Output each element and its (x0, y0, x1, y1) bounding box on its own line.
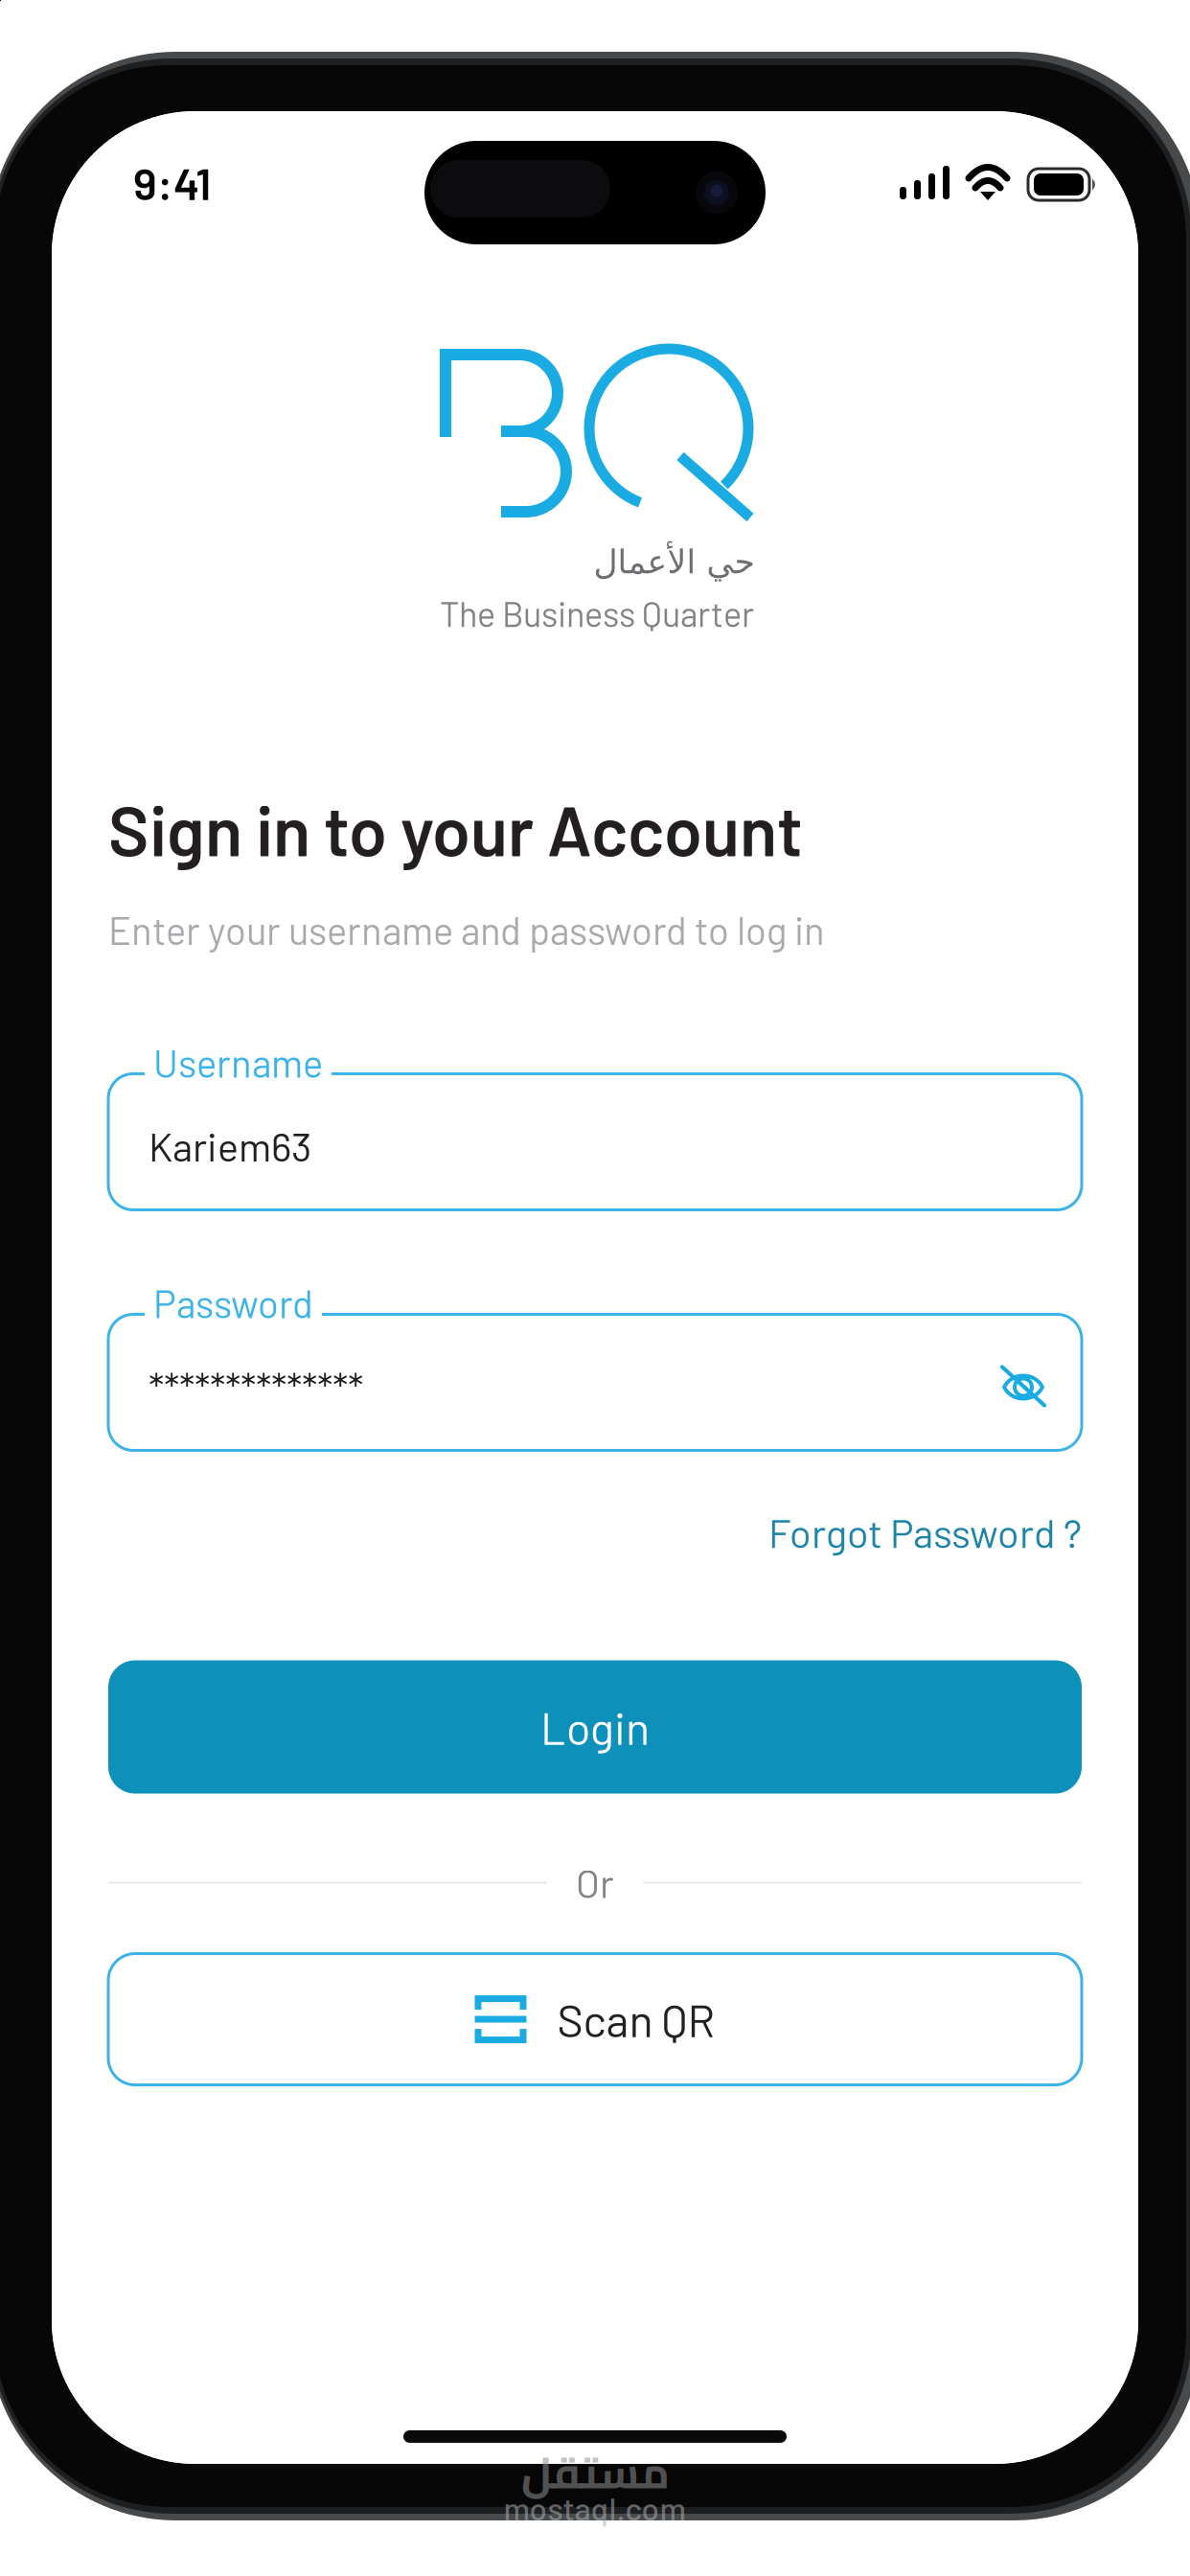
staticText: Sign in to your Account (108, 787, 803, 870)
staticText: Forgot Password ? (768, 1508, 1082, 1556)
staticText: مستقل (521, 2432, 669, 2513)
staticText: mostaql.com (503, 2489, 687, 2527)
staticText: حي الأعمال (593, 542, 754, 581)
button[interactable]: Login (108, 1660, 1082, 1794)
staticText: Or (576, 1860, 614, 1906)
staticText: Password (153, 1280, 313, 1326)
staticText: Username (153, 1039, 323, 1085)
staticText: ************** (149, 1362, 363, 1410)
staticText: The Business Quarter (440, 593, 754, 634)
staticText: Enter your username and password to log … (108, 907, 825, 953)
button[interactable]: Scan QR (108, 1954, 1082, 2085)
button[interactable]: Forgot Password ? (768, 1508, 1082, 1556)
staticText: Kariem63 (149, 1122, 311, 1169)
button[interactable]: Show password (998, 1363, 1048, 1409)
staticText: 9:41 (133, 155, 211, 209)
staticText: Login (540, 1700, 650, 1754)
staticText: Scan QR (557, 1992, 715, 2046)
